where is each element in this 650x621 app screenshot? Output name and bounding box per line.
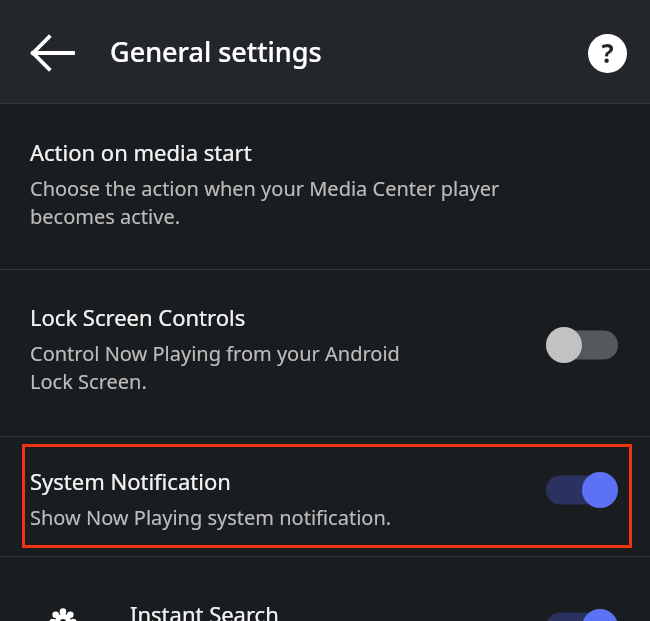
button[interactable]: Toggle on: [546, 609, 618, 621]
button[interactable]: Toggle on: [546, 472, 618, 508]
staticText: Show Now Playing system notification.: [30, 504, 392, 531]
staticText: Action on media start: [30, 137, 252, 167]
staticText: Choose the action when your Media Center…: [30, 175, 500, 230]
staticText: ?: [601, 35, 614, 70]
button[interactable]: System Notification: [0, 437, 650, 556]
staticText: System Notification: [30, 466, 231, 496]
button[interactable]: Action on media start: [0, 104, 650, 269]
staticText: General settings: [110, 33, 322, 70]
button[interactable]: Help: [583, 29, 631, 77]
button[interactable]: Lock Screen Controls: [0, 270, 650, 436]
staticText: Control Now Playing from your Android Lo…: [30, 340, 400, 395]
button[interactable]: Toggle off: [546, 327, 618, 363]
button[interactable]: Back: [18, 30, 88, 76]
staticText: Instant Search: [130, 599, 279, 621]
staticText: Lock Screen Controls: [30, 302, 246, 332]
button[interactable]: Instant Search: [0, 557, 650, 621]
